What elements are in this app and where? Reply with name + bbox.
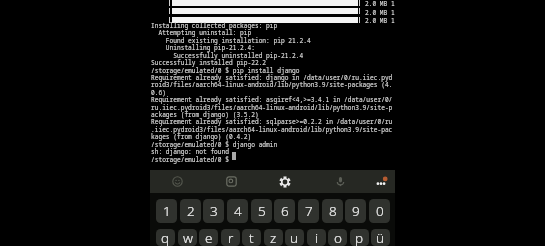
staticText: ü xyxy=(376,229,385,246)
button[interactable]: u xyxy=(285,229,304,246)
staticText: 2.0 MB 1.9 xyxy=(365,16,395,24)
staticText: 1 xyxy=(163,202,171,220)
staticText: 4 xyxy=(234,202,242,220)
button[interactable]: 9 xyxy=(345,199,366,223)
staticText: 7 xyxy=(305,202,313,220)
staticText: Uninstalling pip-21.2.4: xyxy=(151,43,255,51)
button[interactable]: i xyxy=(307,229,326,246)
staticText: 2.0 MB 1.9 xyxy=(365,0,395,7)
button[interactable]: ü xyxy=(371,229,390,246)
staticText: 0.6) xyxy=(151,88,166,96)
staticText: .iiec.pydroid3/files/aarch64-linux-andro… xyxy=(151,125,393,133)
staticText: Requirement already satisfied: sqlparse>… xyxy=(151,117,393,125)
staticText: sh: django: not found xyxy=(151,147,229,155)
staticText: roid3/files/aarch64-linux-android/lib/py… xyxy=(151,80,393,88)
staticText: e xyxy=(205,229,213,246)
button[interactable]: p xyxy=(350,229,369,246)
staticText: p xyxy=(355,229,364,246)
staticText: Successfully installed pip-22.2 xyxy=(151,58,267,66)
staticText: Installing collected packages: pip xyxy=(151,21,278,29)
button[interactable]: 1 xyxy=(156,199,177,223)
staticText: o xyxy=(334,229,342,246)
staticText: z xyxy=(270,229,277,246)
staticText: 2.0 MB 1.9 xyxy=(365,8,395,16)
staticText: Found existing installation: pip 21.2.4 xyxy=(151,36,311,44)
button[interactable]: 5 xyxy=(251,199,272,223)
staticText: r xyxy=(228,229,234,246)
staticText: ackages (from django) (3.5.2) xyxy=(151,110,259,118)
staticText: w xyxy=(183,229,193,246)
staticText: 0 xyxy=(376,202,384,220)
button[interactable]: 8 xyxy=(322,199,343,223)
button[interactable]: Settings xyxy=(274,170,296,193)
button[interactable]: 6 xyxy=(274,199,295,223)
staticText: 2 xyxy=(187,202,195,220)
button[interactable]: w xyxy=(178,229,197,246)
staticText: 3 xyxy=(210,202,218,220)
button[interactable]: 7 xyxy=(298,199,319,223)
staticText: t xyxy=(249,229,254,246)
button[interactable]: z xyxy=(264,229,283,246)
button[interactable]: r xyxy=(221,229,240,246)
staticText: Attempting uninstall: pip xyxy=(151,28,252,36)
staticText: u xyxy=(290,229,299,246)
button[interactable]: More options xyxy=(370,170,392,193)
button[interactable]: Voice input xyxy=(329,170,351,193)
button[interactable]: o xyxy=(328,229,347,246)
staticText: kages (from django) (0.4.2) xyxy=(151,132,252,140)
staticText: 8 xyxy=(329,202,337,220)
button[interactable]: 2 xyxy=(180,199,201,223)
button[interactable]: e xyxy=(199,229,218,246)
button[interactable]: 0 xyxy=(369,199,390,223)
staticText: /storage/emulated/0 $ xyxy=(151,155,229,163)
button[interactable]: Emoji xyxy=(166,170,188,193)
staticText: Successfully uninstalled pip-21.2.4 xyxy=(151,51,304,59)
staticText: /storage/emulated/0 $ django admin xyxy=(151,140,278,148)
button[interactable]: 3 xyxy=(203,199,224,223)
staticText: 9 xyxy=(352,202,360,220)
button[interactable]: Stickers xyxy=(220,170,242,193)
staticText: Requirement already satisfied: asgiref<4… xyxy=(151,95,393,103)
staticText: Requirement already satisfied: django in… xyxy=(151,73,393,81)
staticText: q xyxy=(161,229,170,246)
staticText: ru.iiec.pydroid3/files/aarch64-linux-and… xyxy=(151,103,393,111)
button[interactable]: q xyxy=(156,229,175,246)
staticText: i xyxy=(315,229,319,246)
staticText: /storage/emulated/0 $ pip install django xyxy=(151,66,300,74)
button[interactable]: 4 xyxy=(227,199,248,223)
button[interactable]: t xyxy=(242,229,261,246)
staticText: 6 xyxy=(281,202,289,220)
staticText: 5 xyxy=(258,202,266,220)
